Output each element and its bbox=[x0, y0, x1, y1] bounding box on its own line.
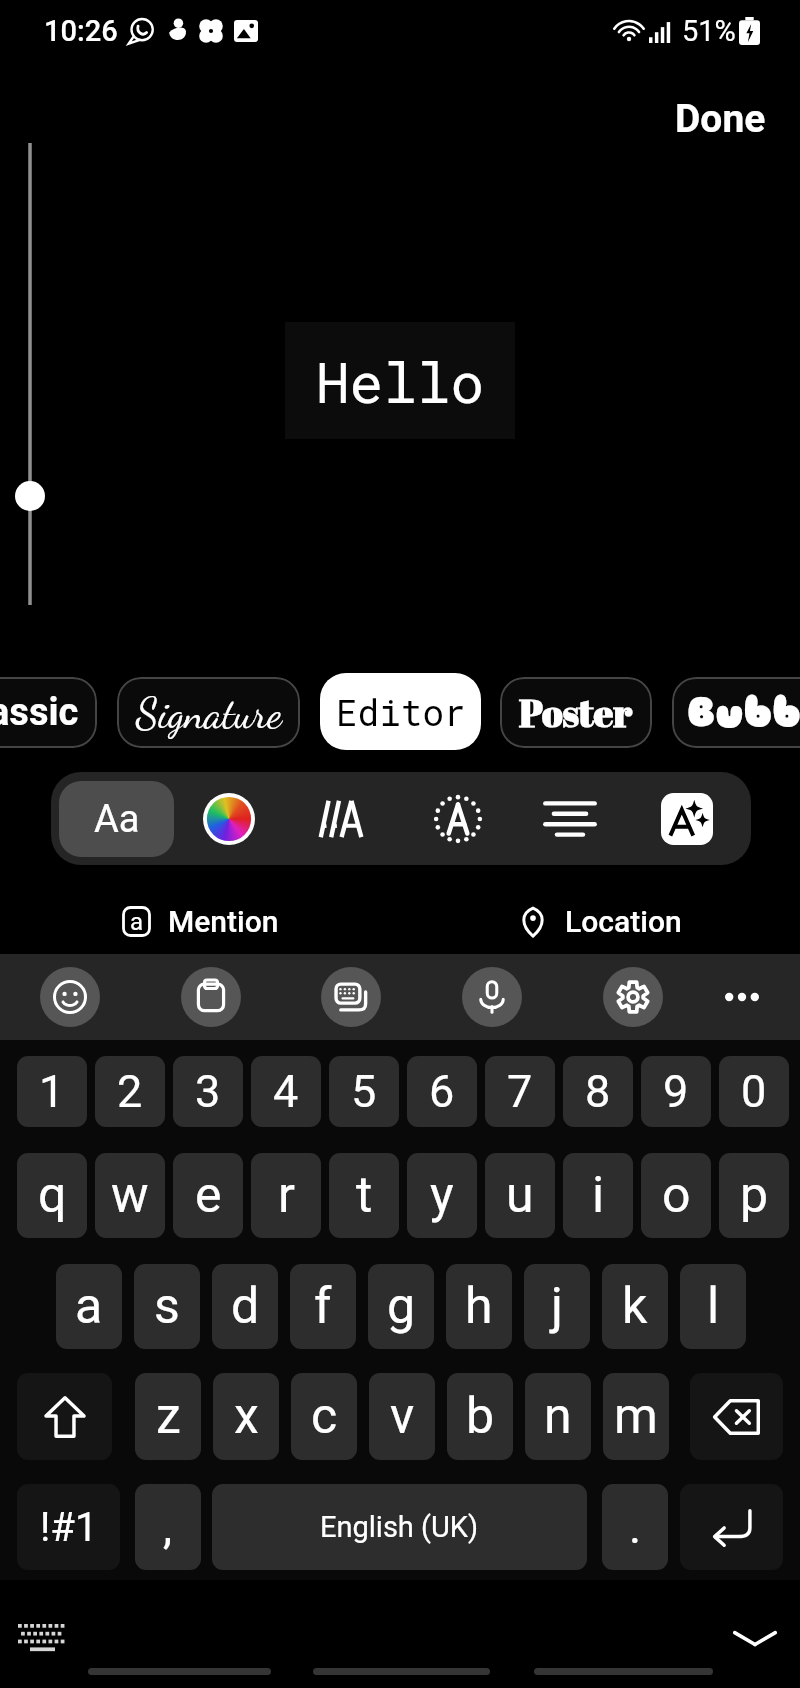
button[interactable]: d bbox=[212, 1264, 278, 1349]
button[interactable]: v bbox=[369, 1373, 435, 1460]
button[interactable]: Poster bbox=[500, 677, 652, 748]
staticText: d bbox=[231, 1277, 260, 1336]
staticText: o bbox=[662, 1166, 691, 1225]
staticText: g bbox=[387, 1277, 416, 1336]
button[interactable]: Navigation bbox=[88, 1668, 271, 1675]
staticText: 8 bbox=[585, 1065, 611, 1118]
button[interactable]: u bbox=[485, 1153, 555, 1238]
button[interactable]: English (UK) bbox=[212, 1484, 587, 1570]
button[interactable]: Signature bbox=[117, 677, 300, 748]
button[interactable]: r bbox=[251, 1153, 321, 1238]
staticText: 5 bbox=[351, 1065, 377, 1118]
button[interactable]: Bubble bbox=[672, 677, 800, 748]
button[interactable]: Classic bbox=[0, 677, 97, 748]
button[interactable]: More bbox=[712, 967, 772, 1027]
button[interactable]: l bbox=[680, 1264, 746, 1349]
button[interactable]: Navigation bbox=[313, 1668, 490, 1675]
button[interactable]: AI text bbox=[649, 781, 725, 857]
button[interactable]: x bbox=[213, 1373, 279, 1460]
button[interactable]: 0 bbox=[719, 1056, 789, 1127]
button[interactable]: f bbox=[290, 1264, 356, 1349]
button[interactable]: Hide keyboard bbox=[726, 1620, 784, 1656]
button[interactable]: 9 bbox=[641, 1056, 711, 1127]
button[interactable]: Navigation bbox=[534, 1668, 713, 1675]
button[interactable]: Enter bbox=[680, 1484, 783, 1570]
button[interactable]: 3 bbox=[173, 1056, 243, 1127]
button[interactable]: Font style bbox=[302, 781, 378, 857]
button[interactable]: !#1 bbox=[17, 1484, 120, 1570]
staticText: x bbox=[234, 1387, 259, 1446]
staticText: k bbox=[622, 1277, 648, 1336]
staticText: j bbox=[551, 1277, 563, 1336]
button[interactable]: Effects bbox=[420, 781, 496, 857]
staticText: a bbox=[75, 1277, 103, 1336]
button[interactable]: m bbox=[603, 1373, 669, 1460]
button[interactable]: o bbox=[641, 1153, 711, 1238]
button[interactable]: Colour bbox=[191, 781, 267, 857]
staticText: Done bbox=[675, 96, 766, 142]
button[interactable]: Emoji bbox=[40, 967, 100, 1027]
staticText: h bbox=[465, 1277, 493, 1336]
button[interactable]: a bbox=[56, 1264, 122, 1349]
staticText: a bbox=[130, 908, 144, 936]
staticText: 2 bbox=[117, 1065, 143, 1118]
button[interactable]: i bbox=[563, 1153, 633, 1238]
button[interactable]: q bbox=[17, 1153, 87, 1238]
button[interactable]: Settings bbox=[603, 967, 663, 1027]
button[interactable]: Keyboard modes bbox=[321, 967, 381, 1027]
staticText: w bbox=[111, 1166, 149, 1225]
button[interactable]: 7 bbox=[485, 1056, 555, 1127]
button[interactable]: p bbox=[719, 1153, 789, 1238]
button[interactable]: s bbox=[134, 1264, 200, 1349]
staticText: 6 bbox=[429, 1065, 455, 1118]
button[interactable]: Editor bbox=[320, 673, 481, 750]
button[interactable]: 6 bbox=[407, 1056, 477, 1127]
button[interactable]: e bbox=[173, 1153, 243, 1238]
button[interactable]: Voice input bbox=[462, 967, 522, 1027]
button[interactable]: h bbox=[446, 1264, 512, 1349]
staticText: v bbox=[390, 1387, 415, 1446]
button[interactable]: Shift bbox=[17, 1373, 112, 1460]
button[interactable]: w bbox=[95, 1153, 165, 1238]
button[interactable]: 2 bbox=[95, 1056, 165, 1127]
button[interactable]: 5 bbox=[329, 1056, 399, 1127]
staticText: p bbox=[740, 1166, 769, 1225]
staticText: 51% bbox=[682, 14, 736, 48]
staticText: l bbox=[707, 1277, 720, 1336]
button[interactable]: g bbox=[368, 1264, 434, 1349]
button[interactable]: Keyboard layout bbox=[18, 1624, 68, 1654]
button[interactable]: Alignment bbox=[532, 781, 608, 857]
staticText: c bbox=[311, 1387, 338, 1446]
button[interactable]: Done bbox=[671, 94, 770, 144]
staticText: Hello bbox=[316, 344, 485, 418]
button[interactable]: Clipboard bbox=[181, 967, 241, 1027]
staticText: 0 bbox=[741, 1065, 767, 1118]
staticText: u bbox=[506, 1166, 534, 1225]
button[interactable]: , bbox=[135, 1484, 201, 1570]
button[interactable]: 8 bbox=[563, 1056, 633, 1127]
button[interactable]: z bbox=[135, 1373, 201, 1460]
button[interactable]: c bbox=[291, 1373, 357, 1460]
button[interactable]: Aa bbox=[59, 781, 174, 857]
button[interactable]: a bbox=[0, 890, 400, 952]
staticText: Signature bbox=[136, 688, 282, 738]
button[interactable]: 4 bbox=[251, 1056, 321, 1127]
button[interactable]: t bbox=[329, 1153, 399, 1238]
button[interactable]: Backspace bbox=[690, 1373, 783, 1460]
staticText: Aa bbox=[94, 797, 140, 842]
staticText: q bbox=[38, 1166, 67, 1225]
staticText: Mention bbox=[168, 904, 279, 939]
button[interactable]: Text size slider bbox=[14, 143, 46, 605]
staticText: English (UK) bbox=[320, 1510, 479, 1544]
button[interactable]: k bbox=[602, 1264, 668, 1349]
button[interactable]: Location bbox=[400, 890, 800, 952]
button[interactable]: n bbox=[525, 1373, 591, 1460]
button[interactable]: j bbox=[524, 1264, 590, 1349]
button[interactable]: 1 bbox=[17, 1056, 87, 1127]
button[interactable]: y bbox=[407, 1153, 477, 1238]
button[interactable]: . bbox=[602, 1484, 668, 1570]
staticText: Location bbox=[565, 904, 682, 939]
staticText: , bbox=[163, 1500, 173, 1554]
button[interactable]: b bbox=[447, 1373, 513, 1460]
staticText: Poster bbox=[519, 687, 633, 738]
